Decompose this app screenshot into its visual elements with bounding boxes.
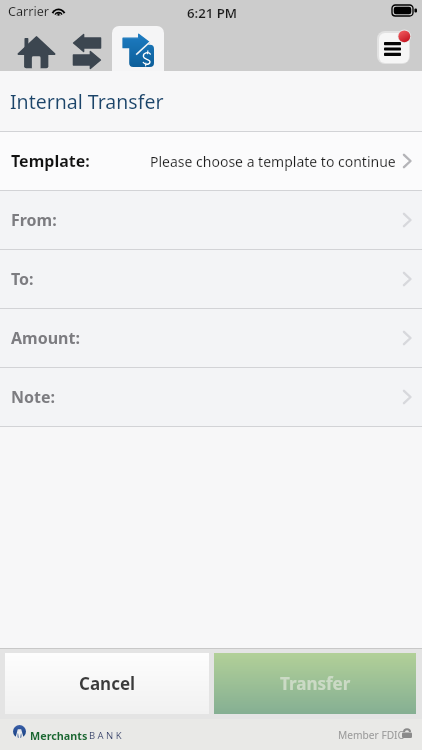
staticText: To: bbox=[11, 268, 34, 290]
staticText: 6:21 PM bbox=[187, 4, 238, 22]
staticText: From: bbox=[11, 209, 57, 231]
button[interactable]: Cancel bbox=[5, 653, 209, 714]
staticText: Merchants bbox=[30, 728, 88, 743]
staticText: Carrier bbox=[8, 3, 49, 20]
button[interactable]: Menu bbox=[374, 28, 414, 68]
staticText: BANK bbox=[89, 729, 124, 742]
button[interactable]: Internal Transfer bbox=[112, 26, 164, 71]
staticText: Amount: bbox=[11, 327, 80, 349]
staticText: Transfer bbox=[280, 672, 351, 695]
button[interactable]: Note: bbox=[0, 368, 422, 426]
button[interactable]: To: bbox=[0, 250, 422, 308]
button[interactable]: Home bbox=[4, 26, 64, 71]
staticText: Please choose a template to continue bbox=[150, 152, 396, 171]
staticText: Internal Transfer bbox=[10, 88, 164, 115]
button[interactable]: Amount: bbox=[0, 309, 422, 367]
button[interactable]: Template: bbox=[0, 132, 422, 190]
staticText: Cancel bbox=[79, 672, 136, 695]
button[interactable]: Transfers bbox=[64, 26, 112, 71]
staticText: Template: bbox=[11, 150, 90, 172]
staticText: Note: bbox=[11, 386, 56, 408]
button[interactable]: From: bbox=[0, 191, 422, 249]
button[interactable]: Transfer bbox=[214, 653, 416, 714]
staticText: Member FDIC bbox=[338, 728, 404, 742]
